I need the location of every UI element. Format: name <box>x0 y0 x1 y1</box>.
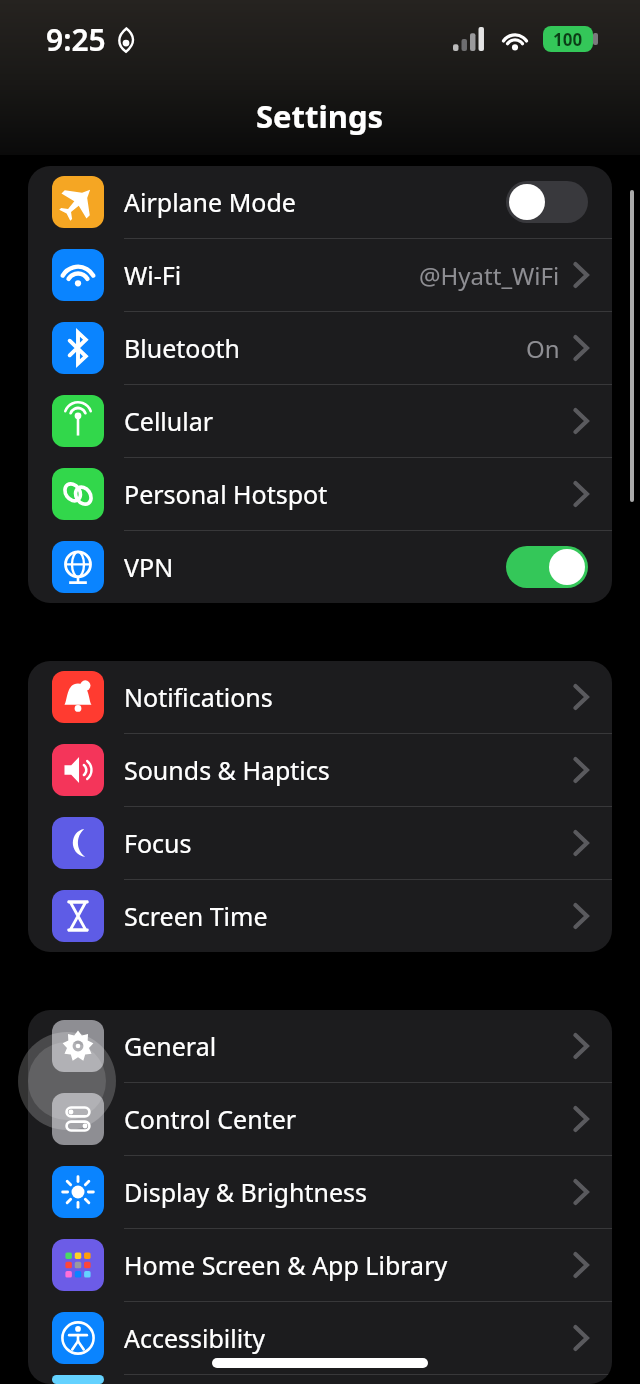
staticText: VPN <box>124 550 174 584</box>
staticText: On <box>526 332 560 365</box>
button[interactable]: General <box>28 1010 612 1082</box>
button[interactable]: Accessibility <box>28 1302 612 1374</box>
staticText: 9:25 <box>46 19 106 60</box>
button[interactable]: Sounds & Haptics <box>28 734 612 806</box>
button[interactable]: Display & Brightness <box>28 1156 612 1228</box>
button[interactable]: Notifications <box>28 661 612 733</box>
button[interactable]: Toggle on <box>506 546 588 588</box>
button[interactable]: Home Screen & App Library <box>28 1229 612 1301</box>
staticText: Home Screen & App Library <box>124 1248 448 1282</box>
button[interactable]: Focus <box>28 807 612 879</box>
staticText: 100 <box>553 28 583 51</box>
staticText: General <box>124 1029 217 1063</box>
staticText: Cellular <box>124 404 214 438</box>
staticText: Screen Time <box>124 899 268 933</box>
button[interactable]: Airplane Mode <box>28 166 612 238</box>
staticText: Display & Brightness <box>124 1175 367 1209</box>
other: AssistiveTouch <box>18 1032 116 1130</box>
staticText: @Hyatt_WiFi <box>419 259 560 292</box>
button[interactable]: Control Center <box>28 1083 612 1155</box>
staticText: Wi-Fi <box>124 258 182 292</box>
button[interactable]: VPN <box>28 531 612 603</box>
staticText: Personal Hotspot <box>124 477 328 511</box>
staticText: Bluetooth <box>124 331 241 365</box>
staticText: Focus <box>124 826 192 860</box>
button[interactable]: Bluetooth <box>28 312 612 384</box>
button[interactable]: Wi-Fi <box>28 239 612 311</box>
staticText: Accessibility <box>124 1321 265 1355</box>
staticText: Sounds & Haptics <box>124 753 330 787</box>
staticText: Airplane Mode <box>124 185 296 219</box>
staticText: Settings <box>256 95 384 137</box>
staticText: Notifications <box>124 680 273 714</box>
button[interactable]: Cellular <box>28 385 612 457</box>
button[interactable]: Personal Hotspot <box>28 458 612 530</box>
button[interactable]: Toggle off <box>506 181 588 223</box>
staticText: Control Center <box>124 1102 297 1136</box>
button[interactable] <box>28 1375 612 1384</box>
button[interactable]: Screen Time <box>28 880 612 952</box>
